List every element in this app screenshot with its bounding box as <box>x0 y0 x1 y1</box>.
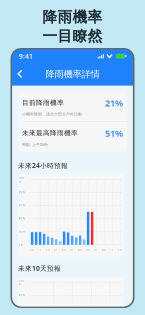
staticText: 51% <box>105 127 123 139</box>
staticText: 17 <box>38 248 42 252</box>
staticText: 小機率降雨，適合大部分戶外活動 <box>22 112 82 116</box>
button[interactable]: Back <box>12 66 28 83</box>
staticText: 目前降雨機率 <box>22 99 64 107</box>
staticText: 40% <box>19 217 25 220</box>
staticText: 未來10天預報 <box>18 264 61 273</box>
staticText: 100 % <box>19 176 25 183</box>
staticText: 19 <box>46 248 50 252</box>
staticText: 降雨機率詳情 <box>45 68 99 80</box>
staticText: 09 <box>102 248 106 252</box>
staticText: 13 <box>118 248 122 252</box>
staticText: 01 <box>70 248 74 252</box>
staticText: 100 % <box>19 279 25 286</box>
staticText: 時點: 上午06時 <box>22 142 48 147</box>
staticText: 60% <box>19 204 25 207</box>
staticText: 一目瞭然 <box>42 27 102 45</box>
staticText: 03 <box>78 248 82 252</box>
staticText: 23 <box>62 248 66 252</box>
staticText: 80% <box>19 190 25 194</box>
staticText: 05 <box>86 248 90 252</box>
staticText: 降雨機率 <box>42 8 102 26</box>
staticText: 未來24小時預報 <box>18 161 68 170</box>
staticText: 0% <box>19 243 23 246</box>
staticText: 21% <box>105 97 123 109</box>
staticText: 21 <box>54 248 58 252</box>
staticText: 15 <box>30 248 34 252</box>
staticText: 未來最高降雨機率 <box>22 129 78 137</box>
staticText: 60% <box>19 306 25 310</box>
staticText: 80% <box>19 293 25 297</box>
staticText: 20% <box>19 230 25 233</box>
staticText: 9:41 <box>19 52 33 61</box>
staticText: 07 <box>94 248 98 252</box>
staticText: 11 <box>110 248 114 252</box>
